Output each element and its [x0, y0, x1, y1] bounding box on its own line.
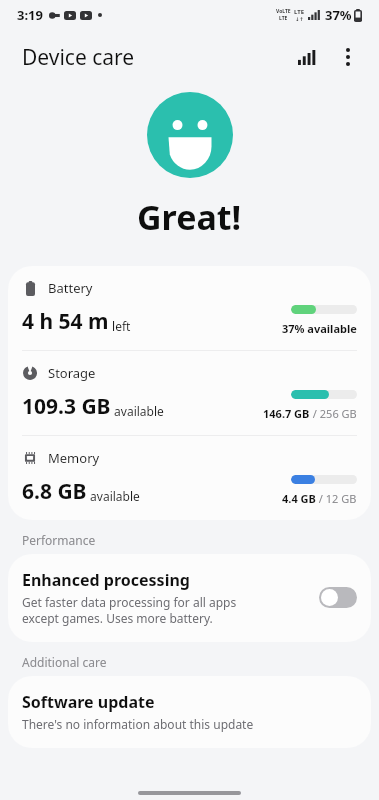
button[interactable]: Usage statistics: [285, 36, 327, 78]
staticText: Software update: [22, 691, 155, 713]
staticText: 146.7 GB: [263, 406, 310, 421]
staticText: There's no information about this update: [22, 716, 254, 732]
staticText: 37%: [325, 6, 352, 24]
staticText: except games. Uses more battery.: [22, 610, 213, 626]
staticText: 4 h 54 m: [22, 307, 109, 336]
staticText: Storage: [48, 364, 96, 382]
staticText: LTE: [294, 8, 305, 16]
button[interactable]: Enhanced processing: [8, 554, 371, 642]
button[interactable]: Software update: [8, 676, 371, 748]
button[interactable]: Enhanced processing toggle: [319, 587, 357, 608]
button[interactable]: Memory: [8, 436, 371, 520]
staticText: Get faster data processing for all apps: [22, 594, 237, 610]
button[interactable]: Battery: [8, 266, 371, 350]
staticText: 109.3 GB: [22, 392, 111, 421]
staticText: 6.8 GB: [22, 477, 87, 506]
staticText: left: [109, 318, 131, 334]
staticText: 4.4 GB: [282, 491, 316, 506]
staticText: available: [87, 488, 140, 504]
staticText: ↓↑: [295, 16, 304, 22]
staticText: 37% available: [282, 321, 357, 336]
staticText: / 12 GB: [316, 491, 357, 506]
staticText: 3:19: [17, 6, 43, 24]
staticText: Device care: [22, 43, 135, 72]
staticText: Battery: [48, 279, 93, 297]
staticText: Great!: [137, 194, 242, 240]
button[interactable]: More options: [327, 36, 369, 78]
staticText: available: [111, 403, 164, 419]
staticText: Memory: [48, 449, 100, 467]
staticText: VoLTE: [276, 8, 291, 15]
staticText: Additional care: [22, 654, 107, 670]
staticText: Enhanced processing: [22, 569, 190, 591]
staticText: LTE: [279, 15, 288, 22]
staticText: Performance: [22, 532, 96, 548]
button[interactable]: Storage: [8, 351, 371, 435]
staticText: / 256 GB: [310, 406, 357, 421]
